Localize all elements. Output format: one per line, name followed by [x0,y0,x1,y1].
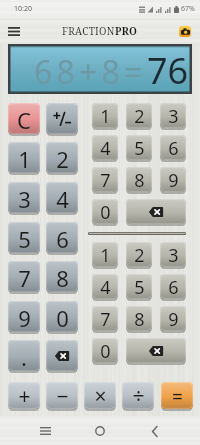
button[interactable]: 5 [126,274,152,301]
staticText: C [17,105,31,135]
staticText: 7 [100,168,111,193]
staticText: 0 [100,200,111,225]
button[interactable]: Menu [3,20,25,42]
button[interactable]: 2 [126,242,152,269]
staticText: 8 [56,263,69,293]
button[interactable]: Camera [179,26,191,37]
staticText: 6 [168,275,179,300]
staticText: 7 [100,307,111,332]
button[interactable]: 0 [92,199,118,226]
button[interactable]: 7 [8,261,40,294]
staticText: 9 [18,303,31,333]
button[interactable]: Plus minus [46,103,78,136]
button[interactable]: 6 [160,135,186,162]
button[interactable]: 6 [46,222,78,255]
staticText: 4 [56,184,69,214]
button[interactable]: 8 [126,306,152,333]
staticText: + [18,382,31,411]
button[interactable]: + [8,382,40,411]
button[interactable]: × [84,382,116,411]
button[interactable]: 7 [92,306,118,333]
staticText: 68+8= [34,50,147,94]
staticText: 0 [100,339,111,364]
staticText: ÷ [132,382,145,411]
staticText: 8 [134,307,145,332]
staticText: 2 [134,104,145,129]
staticText: 67% [181,4,195,14]
button[interactable]: 4 [92,135,118,162]
button[interactable]: . [8,340,40,373]
staticText: = [172,384,183,410]
staticText: 2 [134,243,145,268]
button[interactable]: = [161,382,193,411]
staticText: 5 [134,136,145,161]
staticText: 1 [100,104,111,129]
button[interactable]: C [8,103,40,136]
staticText: . [21,342,27,372]
button[interactable]: Back [143,419,167,443]
button[interactable]: 1 [92,103,118,130]
staticText: 8 [134,168,145,193]
button[interactable]: 8 [46,261,78,294]
staticText: 9 [168,168,179,193]
button[interactable]: Recents [33,419,57,443]
staticText: × [94,382,107,411]
staticText: 4 [100,275,111,300]
button[interactable]: 5 [8,222,40,255]
button[interactable]: 8 [126,167,152,194]
button[interactable]: ÷ [122,382,154,411]
staticText: − [56,382,69,411]
staticText: 5 [18,224,31,254]
button[interactable]: Backspace [126,338,186,365]
staticText: 1 [100,243,111,268]
staticText: 3 [168,104,179,129]
button[interactable]: 1 [92,242,118,269]
button[interactable]: 7 [92,167,118,194]
button[interactable]: 0 [46,301,78,334]
staticText: 3 [18,184,31,214]
staticText: 3 [168,243,179,268]
staticText: 10:20 [14,4,32,14]
button[interactable]: 3 [160,242,186,269]
button[interactable]: Backspace [46,340,78,373]
button[interactable]: 4 [92,274,118,301]
button[interactable]: 9 [160,167,186,194]
staticText: 6 [168,136,179,161]
button[interactable]: Backspace [126,199,186,226]
button[interactable]: 3 [160,103,186,130]
button[interactable]: Home [88,419,112,443]
staticText: 1 [18,144,31,174]
staticText: 2 [56,144,69,174]
staticText: FRACTION [62,24,115,38]
staticText: 9 [168,307,179,332]
button[interactable]: − [46,382,78,411]
staticText: PRO [115,24,138,38]
button[interactable]: 4 [46,182,78,215]
staticText: 0 [56,303,69,333]
button[interactable]: 2 [126,103,152,130]
button[interactable]: 3 [8,182,40,215]
staticText: 76 [147,46,189,95]
button[interactable]: 9 [8,301,40,334]
button[interactable]: 2 [46,142,78,175]
staticText: 5 [134,275,145,300]
button[interactable]: 5 [126,135,152,162]
button[interactable]: 0 [92,338,118,365]
staticText: 6 [56,224,69,254]
staticText: 4 [100,136,111,161]
button[interactable]: 9 [160,306,186,333]
button[interactable]: 6 [160,274,186,301]
staticText: 7 [18,263,31,293]
button[interactable]: 1 [8,142,40,175]
